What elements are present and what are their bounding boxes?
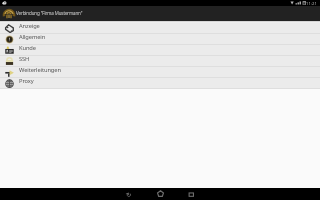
button[interactable]: Back xyxy=(114,188,145,200)
staticText: SSH xyxy=(19,55,30,63)
staticText: Proxy xyxy=(19,77,34,85)
staticText: Kunde xyxy=(19,44,36,52)
button[interactable]: Recent apps xyxy=(176,188,207,200)
staticText: Weiterleitungen xyxy=(19,66,61,74)
staticText: Anzeige xyxy=(19,22,40,30)
button[interactable]: SSH xyxy=(0,56,320,67)
staticText: 11:21 xyxy=(306,0,317,6)
button[interactable]: Weiterleitungen xyxy=(0,67,320,78)
button[interactable]: Kunde xyxy=(0,45,320,56)
button[interactable]: Proxy xyxy=(0,78,320,89)
button[interactable]: Anzeige xyxy=(0,23,320,34)
staticText: Allgemein xyxy=(19,33,46,41)
button[interactable]: Home xyxy=(145,188,176,200)
staticText: Verbindung "Firma Mustermann" xyxy=(16,10,83,16)
button[interactable]: Verbindung "Firma Mustermann" xyxy=(0,6,320,21)
button[interactable]: Allgemein xyxy=(0,34,320,45)
